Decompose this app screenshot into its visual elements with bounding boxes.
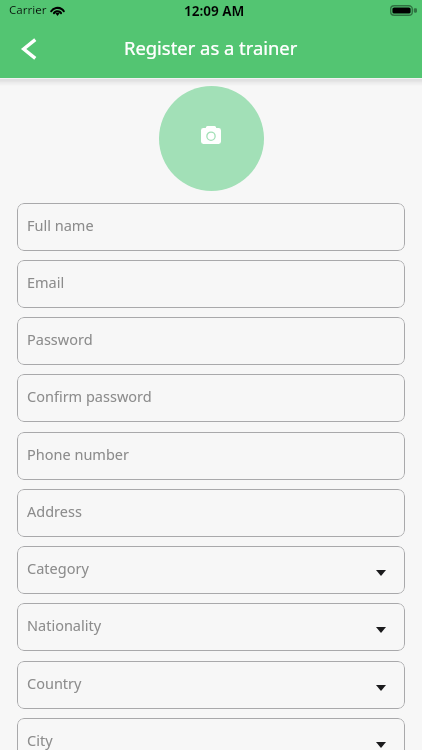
button[interactable]: Category [17,546,405,594]
staticText: Nationality [27,615,102,635]
button[interactable]: Country [17,661,405,709]
staticText: City [27,730,53,750]
staticText: Country [27,673,82,693]
button[interactable]: Phone number [17,432,405,480]
button[interactable]: Nationality [17,603,405,651]
staticText: Address [27,501,82,521]
staticText: Phone number [27,444,129,464]
button[interactable]: Password [17,317,405,365]
button[interactable]: Add profile photo [159,86,264,191]
button[interactable]: Confirm password [17,374,405,422]
button[interactable]: Email [17,260,405,308]
button[interactable]: Address [17,489,405,537]
staticText: Category [27,558,89,578]
staticText: Confirm password [27,386,152,406]
staticText: 12:09 AM [184,2,245,20]
staticText: Email [27,272,65,292]
staticText: Register as a trainer [124,35,298,60]
staticText: Password [27,329,93,349]
staticText: Carrier [9,2,47,18]
button[interactable]: Back [12,31,47,66]
staticText: Full name [27,215,94,235]
button[interactable]: City [17,718,405,750]
button[interactable]: Full name [17,203,405,251]
